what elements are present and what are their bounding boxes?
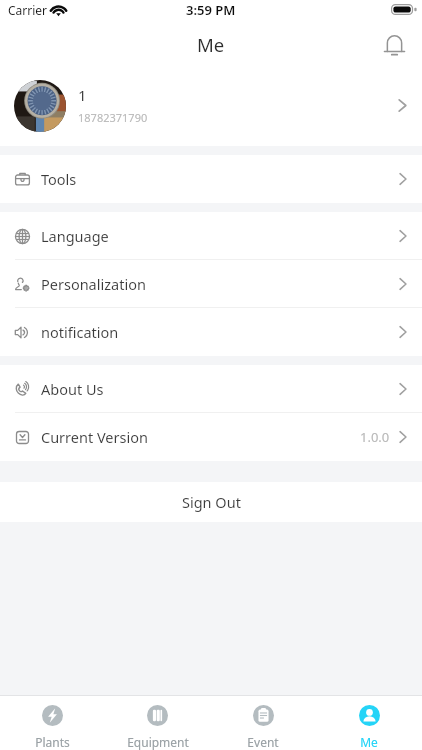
button[interactable]: Equipment bbox=[105, 696, 210, 750]
staticText: 1.0.0 bbox=[360, 428, 390, 446]
staticText: Tools bbox=[41, 169, 77, 189]
button[interactable]: Plants bbox=[0, 696, 105, 750]
button[interactable]: notification bbox=[0, 308, 422, 356]
button[interactable]: Tools bbox=[0, 155, 422, 203]
staticText: Personalization bbox=[41, 274, 146, 294]
staticText: Plants bbox=[35, 734, 70, 750]
button[interactable]: Notifications bbox=[376, 27, 412, 63]
staticText: About Us bbox=[41, 379, 104, 399]
button[interactable]: Me bbox=[316, 696, 422, 750]
staticText: 18782371790 bbox=[78, 110, 148, 125]
staticText: Event bbox=[247, 734, 279, 750]
staticText: Me bbox=[360, 734, 378, 750]
staticText: Me bbox=[197, 32, 225, 57]
button[interactable]: 1 bbox=[0, 65, 422, 146]
button[interactable]: Event bbox=[210, 696, 316, 750]
button[interactable]: Sign Out bbox=[0, 482, 422, 522]
staticText: Language bbox=[41, 226, 109, 246]
staticText: Equipment bbox=[127, 734, 189, 750]
button[interactable]: Personalization bbox=[0, 260, 422, 308]
staticText: notification bbox=[41, 322, 119, 342]
staticText: Carrier bbox=[8, 2, 48, 18]
staticText: Current Version bbox=[41, 427, 148, 447]
staticText: Sign Out bbox=[182, 492, 241, 512]
button[interactable]: Language bbox=[0, 212, 422, 260]
staticText: 1 bbox=[78, 85, 87, 105]
button[interactable]: About Us bbox=[0, 365, 422, 413]
button[interactable]: Current Version bbox=[0, 413, 422, 461]
staticText: 3:59 PM bbox=[186, 1, 236, 19]
